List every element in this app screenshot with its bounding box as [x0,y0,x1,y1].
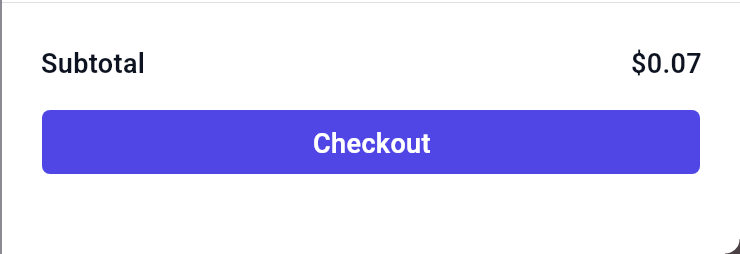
button[interactable]: Checkout [42,110,700,174]
staticText: $0.07 [631,48,703,80]
staticText: Subtotal [41,48,146,80]
staticText: Checkout [313,128,431,160]
